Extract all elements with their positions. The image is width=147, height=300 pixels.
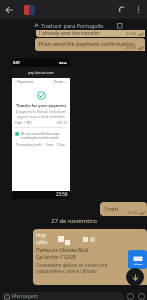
staticText: 1min	[104, 205, 119, 213]
staticText: Close	[57, 143, 66, 147]
staticText: 12:15	[127, 210, 138, 215]
staticText: €31.10	[57, 121, 67, 125]
staticText: http	[36, 232, 46, 239]
button[interactable]: http	[33, 229, 147, 285]
staticText: pay.bitcoin.com	[28, 70, 54, 75]
staticText: Then send the payment confirmation.	[38, 40, 136, 47]
button[interactable]: I already sent the transfer	[36, 30, 145, 37]
staticText: сохраняйте к себе в Облако	[36, 268, 97, 274]
staticText: Thanks for your payment	[16, 103, 67, 108]
staticText: Mensagem	[12, 293, 39, 300]
button[interactable]: Voice call	[114, 2, 129, 17]
staticText: cyбл.	[36, 239, 49, 246]
staticText: 23:57	[126, 45, 137, 50]
staticText: 0:07	[13, 60, 20, 65]
staticText: We can now confirm the unique position	[21, 132, 67, 136]
button[interactable]: Mensagem	[2, 292, 124, 300]
staticText: Paid · 1 BTC	[15, 121, 33, 125]
staticText: 27 de novembro	[51, 217, 97, 225]
button[interactable]: Photo	[12, 58, 70, 199]
staticText: 23:56	[126, 31, 137, 36]
staticText: ▪▪▬	[59, 61, 68, 65]
button[interactable]: Scroll to bottom	[126, 268, 144, 286]
button[interactable]: Profile photo	[24, 5, 35, 15]
staticText: ‹ Payments	[15, 79, 34, 84]
staticText: Cp-Archiv-112GB	[36, 254, 76, 261]
button[interactable]: 1min	[100, 202, 147, 216]
staticText: Done ⌄	[54, 79, 67, 84]
button[interactable]: Then send the payment confirmation.	[35, 38, 145, 51]
staticText: Скачивайте файлы из папки или	[36, 262, 108, 268]
staticText: Traduzir para Português	[41, 22, 104, 29]
button[interactable]: Back	[1, 2, 16, 17]
staticText: Transaction hash	[16, 143, 42, 147]
staticText: Папка из Облака Mail	[36, 247, 89, 254]
button[interactable]: Traduzir para Português	[34, 21, 104, 30]
staticText: 23:56	[56, 191, 68, 197]
staticText: I already sent the transfer	[39, 30, 100, 37]
staticText: according the time the transfer designat…	[21, 136, 67, 140]
staticText: A payment to Mandal Limited will appear …	[16, 110, 66, 118]
staticText: облако	[134, 262, 143, 265]
button[interactable]: More options	[131, 2, 145, 16]
staticText: View	[46, 143, 53, 147]
button[interactable]: Copy	[116, 22, 123, 29]
